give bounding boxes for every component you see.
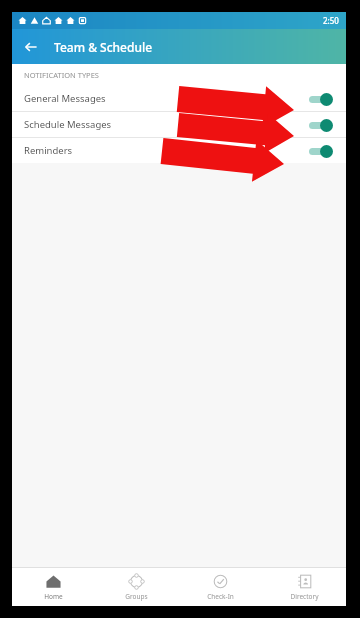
button[interactable]: Directory	[262, 574, 346, 601]
staticText: Groups	[125, 592, 148, 601]
button[interactable]: Groups	[95, 574, 178, 601]
button[interactable]: Toggle	[308, 144, 334, 158]
staticText: Directory	[290, 592, 319, 601]
button[interactable]: Home	[12, 574, 95, 601]
button[interactable]: Check-In	[178, 574, 262, 601]
staticText: Team & Schedule	[54, 39, 153, 55]
staticText: 2:50	[323, 15, 339, 26]
staticText: Reminders	[24, 144, 308, 157]
button[interactable]: Back	[18, 34, 44, 60]
staticText: Check-In	[207, 592, 234, 601]
button[interactable]: Schedule Messages	[12, 112, 346, 137]
button[interactable]: Toggle	[308, 92, 334, 106]
staticText: Schedule Messages	[24, 118, 308, 131]
button[interactable]: General Messages	[12, 86, 346, 111]
button[interactable]: Reminders	[12, 138, 346, 163]
staticText: Home	[44, 592, 63, 601]
staticText: General Messages	[24, 92, 308, 105]
staticText: NOTIFICATION TYPES	[24, 70, 99, 80]
button[interactable]: Toggle	[308, 118, 334, 132]
